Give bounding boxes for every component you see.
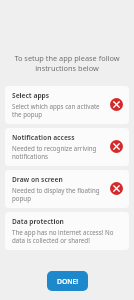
button[interactable]: Permission not granted: [110, 98, 123, 111]
button[interactable]: DONE!: [47, 271, 88, 291]
button[interactable]: Permission not granted: [110, 140, 123, 153]
staticText: Notification access: [12, 133, 75, 142]
staticText: Needed to display the floating popup: [12, 186, 106, 202]
staticText: DONE!: [57, 277, 79, 286]
button[interactable]: Permission not granted: [110, 182, 123, 195]
staticText: To setup the app please follow instructi…: [13, 53, 121, 73]
button[interactable]: Data protection: [5, 212, 129, 250]
staticText: Data protection: [12, 217, 64, 226]
staticText: Select which apps can activate the popup: [12, 102, 106, 118]
staticText: Draw on screen: [12, 175, 63, 184]
staticText: Needed to recognize arriving notificatio…: [12, 144, 106, 160]
staticText: Select apps: [12, 91, 50, 100]
button[interactable]: Draw on screen: [5, 170, 129, 208]
button[interactable]: Notification access: [5, 128, 129, 166]
button[interactable]: Select apps: [5, 86, 129, 124]
staticText: The app has no internet access! No data …: [12, 228, 125, 244]
